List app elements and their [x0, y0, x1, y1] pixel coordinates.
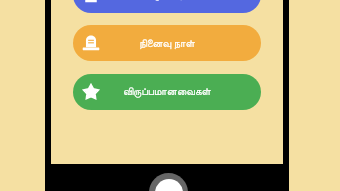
button[interactable]: நினைவு நாள்	[73, 25, 261, 61]
button[interactable]: விருப்பமானவைகள்	[73, 74, 261, 110]
staticText: முகப்பு	[153, 0, 182, 1]
staticText: நினைவு நாள்	[139, 36, 195, 50]
staticText: விருப்பமானவைகள்	[123, 87, 211, 98]
button[interactable]: Home	[149, 173, 188, 191]
button[interactable]: முகப்பு	[73, 0, 261, 13]
